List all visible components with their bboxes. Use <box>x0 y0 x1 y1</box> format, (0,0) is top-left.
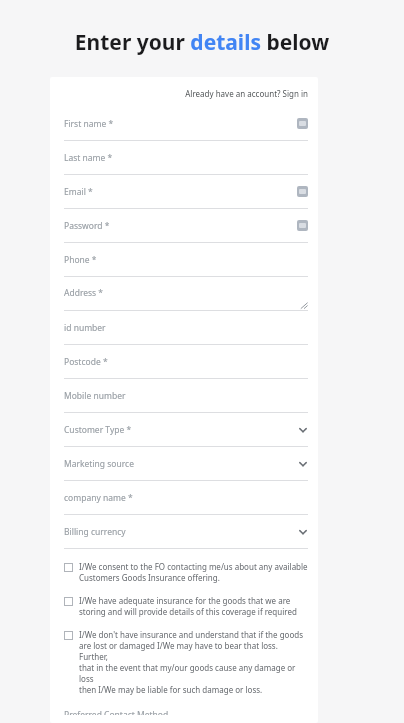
other: Autofill <box>297 118 308 129</box>
staticText: Enter your details below <box>0 28 404 57</box>
button[interactable]: Address * <box>64 277 308 311</box>
staticText: I/We consent to the FO contacting me/us … <box>79 561 308 572</box>
button[interactable]: Password * <box>64 209 308 243</box>
staticText: Customers Goods Insurance offering. <box>79 572 220 583</box>
button[interactable]: Preferred Contact Method <box>64 709 308 715</box>
staticText: Customer Type * <box>64 424 132 436</box>
button[interactable]: Customer Type * <box>64 413 308 447</box>
staticText: I/We don't have insurance and understand… <box>79 629 303 640</box>
button[interactable]: company name * <box>64 481 308 515</box>
staticText: Postcode * <box>64 356 108 368</box>
button[interactable]: First name * <box>64 107 308 141</box>
staticText: Address * <box>64 287 104 299</box>
staticText: then I/We may be liable for such damage … <box>79 684 263 695</box>
button[interactable]: I/We don't have insurance and understand… <box>64 626 308 698</box>
button[interactable]: id number <box>64 311 308 345</box>
button[interactable]: Postcode * <box>64 345 308 379</box>
staticText: Password * <box>64 220 110 232</box>
button[interactable]: Marketing source <box>64 447 308 481</box>
staticText: Mobile number <box>64 390 126 402</box>
other: Open dropdown <box>298 425 308 435</box>
staticText: Phone * <box>64 254 97 266</box>
other: Open dropdown <box>298 527 308 537</box>
staticText: Marketing source <box>64 458 134 470</box>
staticText: Email * <box>64 186 93 198</box>
button[interactable]: Billing currency <box>64 515 308 549</box>
staticText: id number <box>64 322 106 334</box>
staticText: that in the event that my/our goods caus… <box>79 662 308 684</box>
other: Autofill <box>297 186 308 197</box>
button[interactable]: Already have an account? Sign in <box>64 88 308 99</box>
other: Autofill <box>297 220 308 231</box>
staticText: are lost or damaged I/We may have to bea… <box>79 640 308 662</box>
staticText: Billing currency <box>64 526 126 538</box>
staticText: Preferred Contact Method <box>64 709 169 715</box>
button[interactable]: Phone * <box>64 243 308 277</box>
other: Open dropdown <box>298 459 308 469</box>
button[interactable]: Last name * <box>64 141 308 175</box>
staticText: First name * <box>64 118 114 130</box>
button[interactable]: Email * <box>64 175 308 209</box>
staticText: company name * <box>64 492 133 504</box>
button[interactable]: Mobile number <box>64 379 308 413</box>
staticText: I/We have adequate insurance for the goo… <box>79 595 291 606</box>
staticText: Last name * <box>64 152 113 164</box>
staticText: storing and will provide details of this… <box>79 606 297 617</box>
button[interactable]: I/We have adequate insurance for the goo… <box>64 592 308 620</box>
button[interactable]: I/We consent to the FO contacting me/us … <box>64 558 308 586</box>
